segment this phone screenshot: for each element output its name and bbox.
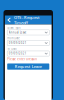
staticText: Leave Type bbox=[7, 26, 21, 29]
staticText: From Date bbox=[7, 36, 20, 40]
staticText: Annual Leave bbox=[9, 31, 27, 34]
staticText: OTS - Request Timeoff bbox=[14, 15, 40, 25]
staticText: Request Leave bbox=[15, 64, 42, 69]
button[interactable]: Request Leave bbox=[7, 63, 49, 70]
button[interactable]: Annual Leave bbox=[7, 30, 49, 35]
button[interactable]: 09/09/2021 bbox=[7, 40, 49, 46]
staticText: 09/09/2021 bbox=[9, 41, 27, 45]
staticText: Please enter a reason bbox=[7, 57, 37, 61]
button[interactable]: Back bbox=[6, 15, 12, 24]
button[interactable]: 09/09/2021 bbox=[7, 51, 49, 56]
staticText: To Date bbox=[7, 47, 17, 50]
staticText: 09/09/2021 bbox=[9, 52, 27, 55]
